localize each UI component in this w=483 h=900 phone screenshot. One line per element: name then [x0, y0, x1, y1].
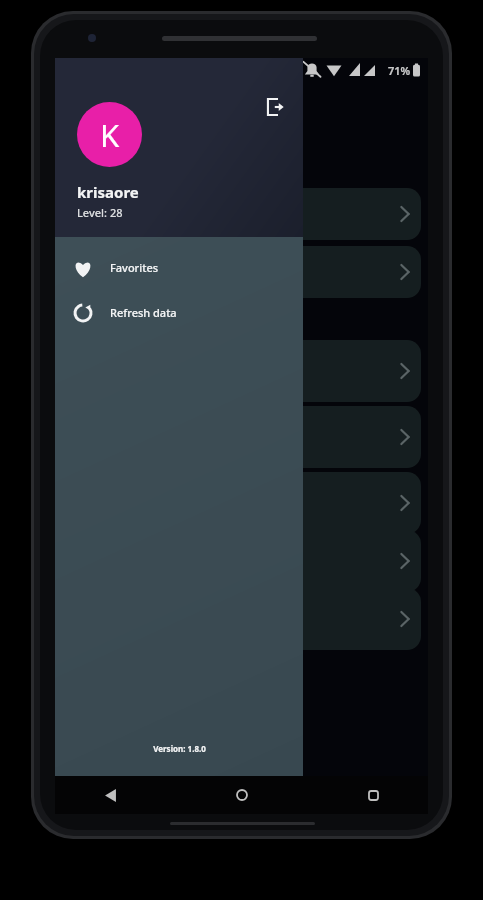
button[interactable]: Log out [263, 94, 289, 120]
staticText: Version: 1.8.0 [153, 743, 206, 754]
staticText: 71% [388, 63, 411, 78]
button[interactable]: K [77, 102, 142, 167]
staticText: Level: 28 [77, 205, 123, 220]
button[interactable]: Home [227, 780, 257, 810]
button[interactable] [235, 530, 421, 592]
button[interactable]: Refresh data [55, 290, 303, 335]
button[interactable]: Recents [358, 780, 388, 810]
button[interactable] [235, 472, 421, 534]
staticText: Favorites [110, 260, 159, 275]
button[interactable] [235, 340, 421, 402]
button[interactable] [235, 246, 421, 298]
button[interactable] [235, 406, 421, 468]
staticText: krisaore [77, 182, 139, 202]
button[interactable] [235, 188, 421, 240]
staticText: K [100, 114, 120, 156]
button[interactable]: Back [95, 780, 125, 810]
button[interactable] [235, 588, 421, 650]
button[interactable]: Favorites [55, 245, 303, 290]
staticText: Refresh data [110, 305, 177, 320]
